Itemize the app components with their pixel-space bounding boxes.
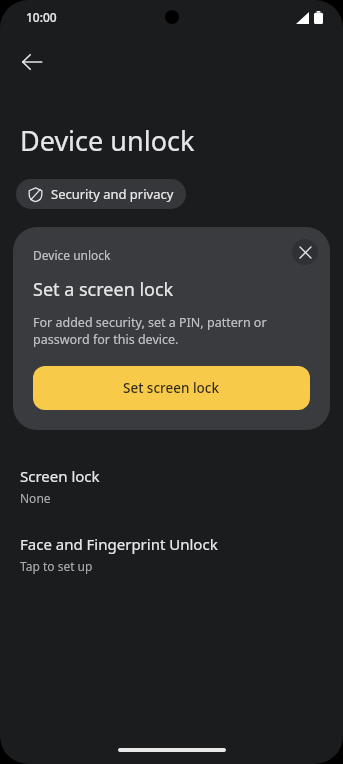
staticText: 10:00	[26, 9, 57, 25]
staticText: Face and Fingerprint Unlock	[20, 534, 218, 554]
button[interactable]: Set screen lock	[33, 366, 310, 410]
staticText: None	[20, 490, 51, 506]
staticText: Tap to set up	[20, 558, 93, 574]
button[interactable]: Face and Fingerprint Unlock	[0, 532, 343, 576]
staticText: Screen lock	[20, 466, 100, 486]
staticText: Device unlock	[20, 122, 195, 159]
staticText: Device unlock	[33, 247, 111, 263]
staticText: For added security, set a PIN, pattern o…	[33, 314, 310, 348]
staticText: Set screen lock	[123, 379, 220, 397]
button[interactable]: Security and privacy	[16, 179, 186, 209]
staticText: Security and privacy	[51, 185, 174, 203]
button[interactable]: Dismiss	[292, 239, 318, 265]
button[interactable]: Screen lock	[0, 464, 343, 508]
button[interactable]: Back	[8, 38, 56, 86]
staticText: Set a screen lock	[33, 277, 174, 302]
